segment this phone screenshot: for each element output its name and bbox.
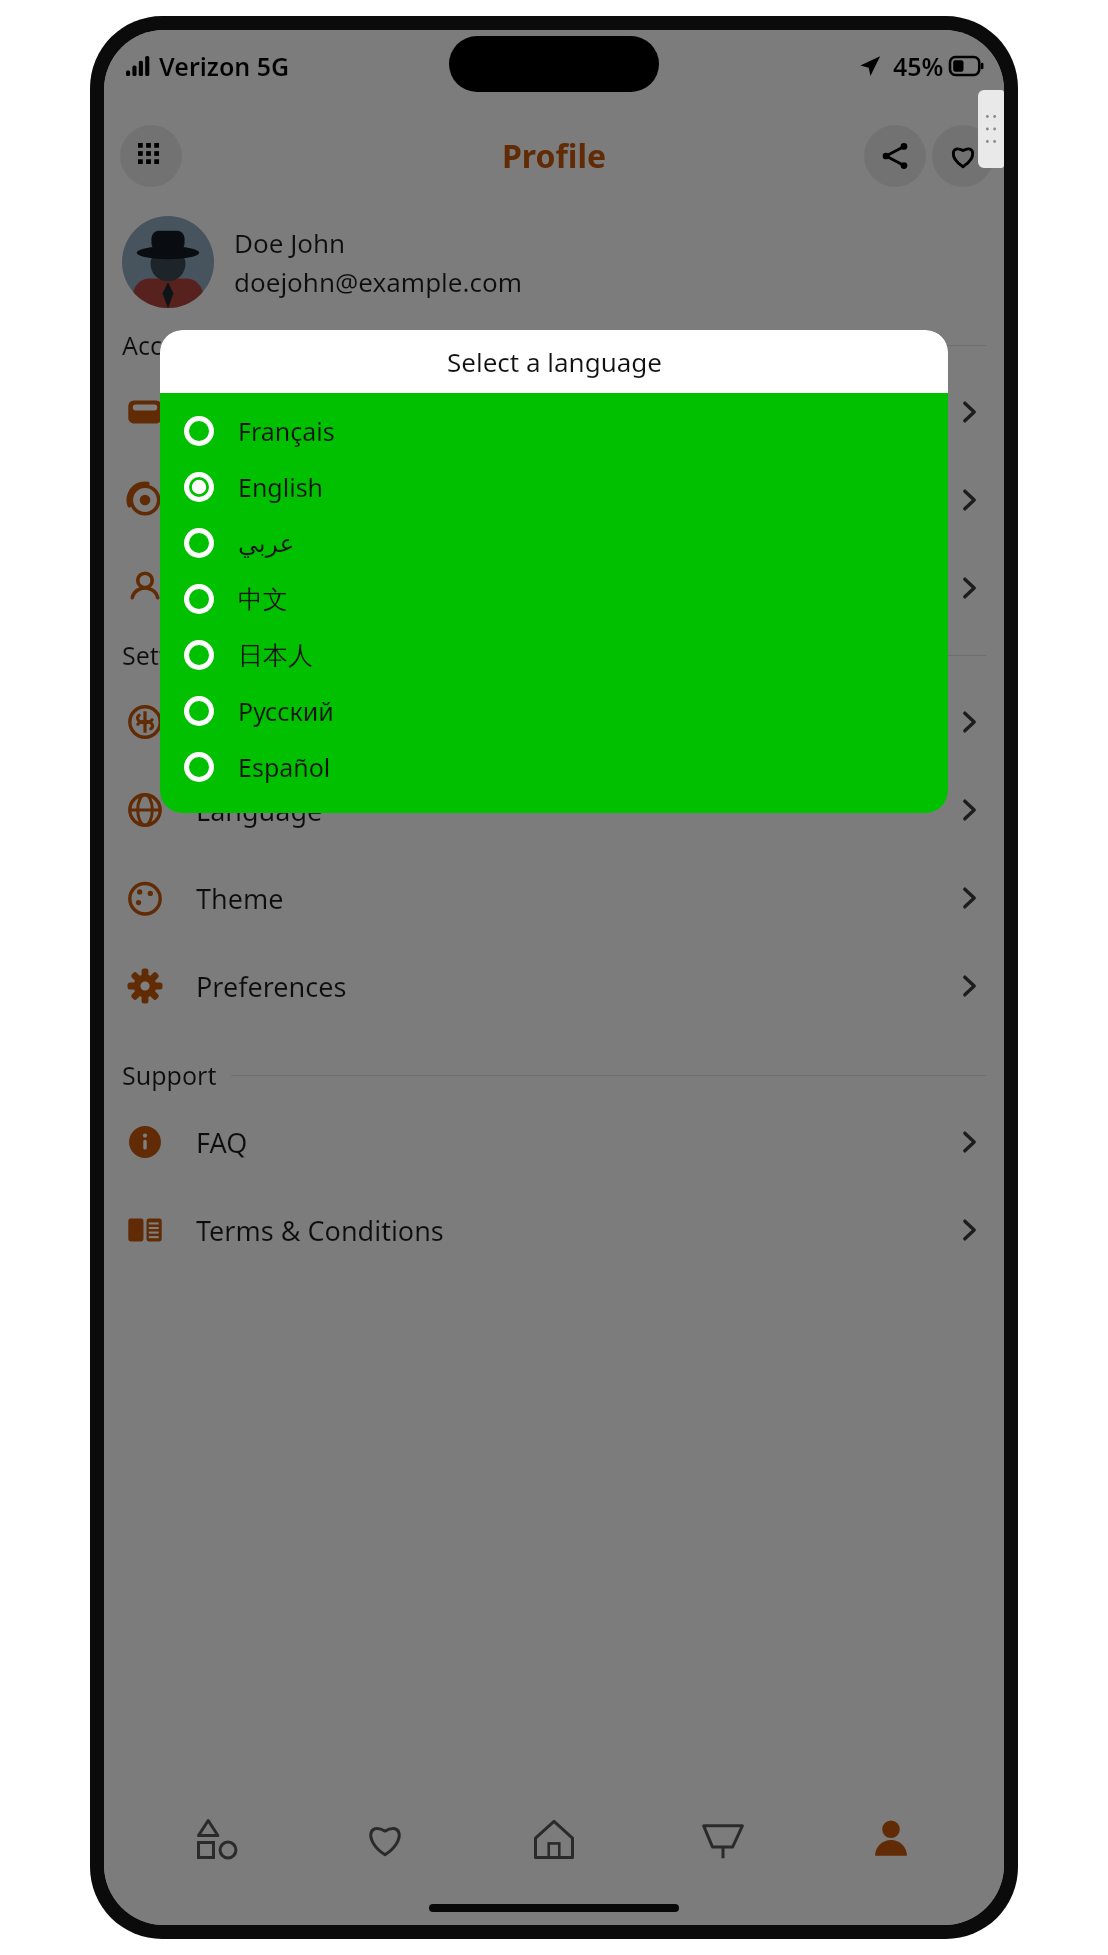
staticText: Personal Info xyxy=(196,570,366,607)
button[interactable]: Terms & Conditions xyxy=(104,1186,1004,1274)
button[interactable]: My Wallet xyxy=(104,368,1004,456)
button[interactable]: 中文 xyxy=(160,571,948,627)
button[interactable]: Personal Info xyxy=(104,544,1004,632)
staticText: Select a language xyxy=(447,344,662,379)
button[interactable]: Profile xyxy=(835,1787,947,1891)
staticText: 45% xyxy=(893,49,944,83)
staticText: 日本人 xyxy=(238,640,313,671)
staticText: Русский xyxy=(238,694,334,728)
staticText: Theme xyxy=(196,880,284,917)
button[interactable]: Español xyxy=(160,739,948,795)
button[interactable]: Home xyxy=(498,1787,610,1891)
button[interactable]: Preferences xyxy=(104,942,1004,1030)
staticText: My Wallet xyxy=(196,394,320,431)
staticText: 中文 xyxy=(238,584,288,615)
staticText: Settings xyxy=(122,638,218,672)
staticText: Français xyxy=(238,414,335,448)
button[interactable]: عربي xyxy=(160,515,948,571)
staticText: Support xyxy=(122,1058,217,1092)
button[interactable]: English xyxy=(160,459,948,515)
button[interactable]: Orders xyxy=(104,456,1004,544)
button[interactable]: Categories xyxy=(161,1787,273,1891)
staticText: doejohn@example.com xyxy=(234,264,522,299)
staticText: Verizon 5G xyxy=(159,49,290,83)
button[interactable]: Menu xyxy=(120,125,182,187)
staticText: Account xyxy=(122,328,218,362)
button[interactable]: 日本人 xyxy=(160,627,948,683)
button[interactable]: FAQ xyxy=(104,1098,1004,1186)
button[interactable]: Language xyxy=(104,766,1004,854)
staticText: Preferences xyxy=(196,968,347,1005)
staticText: Doe John xyxy=(234,225,346,260)
button[interactable]: Cart xyxy=(667,1787,779,1891)
button[interactable]: Русский xyxy=(160,683,948,739)
button[interactable]: Français xyxy=(160,403,948,459)
staticText: Currency xyxy=(196,704,311,741)
staticText: FAQ xyxy=(196,1124,248,1161)
button[interactable]: Favorite xyxy=(932,125,994,187)
button[interactable]: Favorites xyxy=(329,1787,441,1891)
button[interactable]: Currency xyxy=(104,678,1004,766)
staticText: Orders xyxy=(196,482,284,519)
staticText: Español xyxy=(238,750,331,784)
staticText: English xyxy=(238,470,324,504)
button[interactable]: Theme xyxy=(104,854,1004,942)
staticText: عربي xyxy=(238,529,295,558)
staticText: Language xyxy=(196,792,323,829)
staticText: Terms & Conditions xyxy=(196,1212,444,1249)
button[interactable]: Doe John xyxy=(122,216,986,308)
button[interactable]: Share xyxy=(864,125,926,187)
staticText: Profile xyxy=(502,134,607,178)
